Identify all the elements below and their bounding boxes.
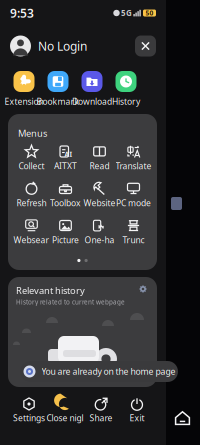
button[interactable]: Close nigl bbox=[47, 396, 83, 424]
staticText: AITXT bbox=[54, 160, 77, 172]
staticText: Toolbox bbox=[50, 197, 81, 209]
staticText: Extension bbox=[4, 96, 43, 107]
button[interactable]: Close bbox=[135, 35, 156, 56]
button[interactable]: Toolbox bbox=[48, 180, 82, 209]
staticText: Refresh bbox=[16, 197, 46, 209]
button[interactable]: Translate bbox=[116, 143, 150, 172]
staticText: Close nigl bbox=[46, 412, 83, 424]
staticText: Picture bbox=[52, 234, 79, 246]
button[interactable]: One-ha bbox=[82, 217, 116, 246]
button[interactable]: Refresh bbox=[14, 180, 48, 209]
button[interactable]: No Login bbox=[10, 35, 87, 56]
staticText: History related to current webpage bbox=[16, 298, 125, 306]
button[interactable]: Collect bbox=[14, 143, 48, 172]
staticText: Relevant history bbox=[16, 284, 85, 297]
staticText: Download bbox=[72, 96, 112, 107]
staticText: No Login bbox=[38, 38, 87, 54]
staticText: Bookmark bbox=[36, 96, 79, 107]
staticText: 5G bbox=[121, 8, 132, 18]
button[interactable]: History bbox=[109, 71, 143, 106]
button[interactable]: Settings bbox=[11, 396, 47, 424]
staticText: One-ha bbox=[84, 234, 114, 246]
staticText: Read bbox=[89, 160, 109, 172]
button[interactable]: Exit bbox=[119, 396, 155, 424]
button[interactable]: Website bbox=[82, 180, 116, 209]
staticText: Trunc bbox=[122, 234, 144, 246]
button[interactable]: Trunc bbox=[116, 217, 150, 246]
button[interactable]: History settings bbox=[139, 285, 147, 293]
staticText: 9:53 bbox=[10, 5, 34, 21]
staticText: Exit bbox=[129, 412, 144, 424]
staticText: Website bbox=[83, 197, 115, 209]
staticText: Collect bbox=[18, 160, 44, 172]
button[interactable]: Picture bbox=[48, 217, 82, 246]
staticText: PC mode bbox=[116, 197, 151, 209]
button[interactable]: Share bbox=[83, 396, 119, 424]
staticText: Menus bbox=[18, 127, 47, 139]
staticText: History bbox=[112, 96, 140, 107]
button[interactable]: AI bbox=[48, 143, 82, 172]
button[interactable]: Websear bbox=[14, 217, 48, 246]
staticText: Settings bbox=[13, 412, 45, 424]
staticText: AI bbox=[64, 150, 72, 158]
staticText: Websear bbox=[13, 234, 49, 246]
staticText: You are already on the home page bbox=[41, 366, 175, 377]
button[interactable]: Home bbox=[174, 410, 191, 427]
staticText: Translate bbox=[115, 160, 151, 172]
button[interactable]: Extension bbox=[7, 71, 41, 106]
staticText: 50 bbox=[145, 9, 153, 17]
button[interactable]: PC mode bbox=[116, 180, 150, 209]
button[interactable]: Bookmark bbox=[41, 71, 75, 106]
button[interactable]: Read bbox=[82, 143, 116, 172]
button[interactable]: Download bbox=[75, 71, 109, 106]
staticText: Share bbox=[89, 412, 112, 424]
